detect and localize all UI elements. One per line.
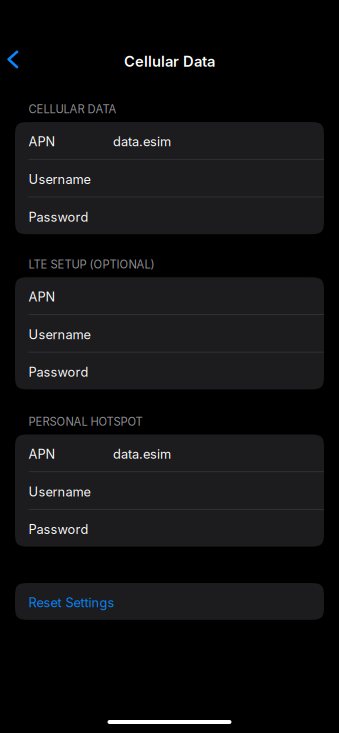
button[interactable]: Reset Settings: [15, 583, 324, 620]
staticText: APN: [28, 446, 55, 462]
staticText: APN: [28, 134, 55, 149]
staticText: CELLULAR DATA: [28, 102, 116, 116]
staticText: Username: [28, 172, 90, 187]
button[interactable]: Back: [0, 41, 40, 81]
button[interactable]: APN: [15, 434, 324, 471]
button[interactable]: Password: [15, 353, 324, 389]
staticText: Reset Settings: [28, 595, 114, 610]
button[interactable]: Username: [15, 160, 324, 197]
staticText: Username: [28, 327, 90, 342]
staticText: LTE SETUP (OPTIONAL): [28, 258, 154, 271]
button[interactable]: Password: [15, 510, 324, 547]
staticText: Password: [28, 364, 88, 380]
button[interactable]: Username: [15, 472, 324, 509]
button[interactable]: APN: [15, 277, 324, 314]
staticText: data.esim: [113, 446, 171, 462]
button[interactable]: APN: [15, 122, 324, 159]
button[interactable]: Username: [15, 315, 324, 352]
staticText: Username: [28, 484, 90, 499]
button[interactable]: Password: [15, 197, 324, 234]
staticText: APN: [28, 289, 55, 305]
staticText: Password: [28, 522, 88, 537]
staticText: PERSONAL HOTSPOT: [28, 415, 142, 428]
staticText: Cellular Data: [124, 53, 215, 70]
staticText: data.esim: [113, 134, 171, 149]
staticText: Password: [28, 209, 88, 225]
